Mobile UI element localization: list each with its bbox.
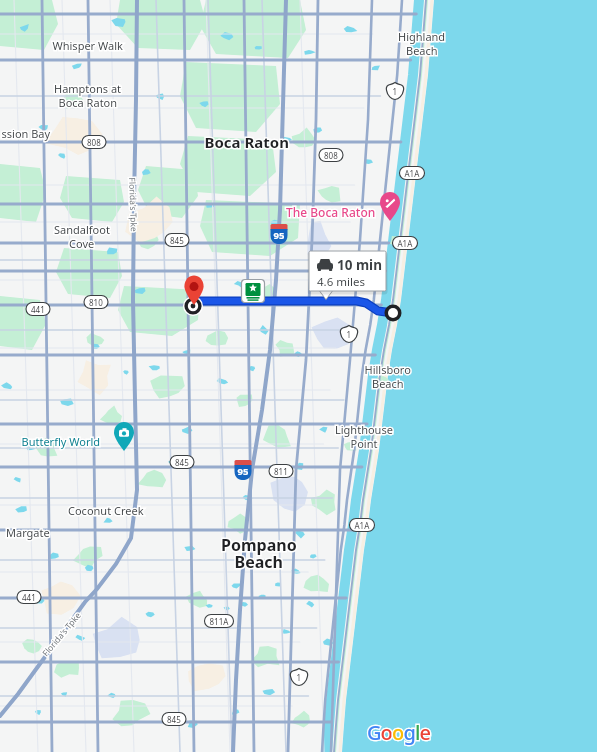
button[interactable]: Map showing driving route, 10 min, 4.6 m…	[0, 0, 597, 752]
